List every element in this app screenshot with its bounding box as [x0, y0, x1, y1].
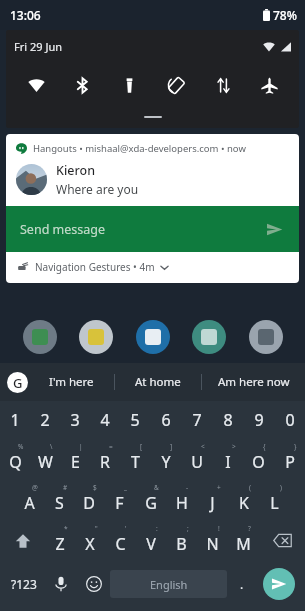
- button[interactable]: *: [45, 520, 75, 561]
- button[interactable]: Hangouts • mishaal@xda-developers.com • …: [6, 134, 299, 206]
- staticText: Where are you: [56, 181, 139, 197]
- staticText: -: [186, 483, 189, 492]
- staticText: <: [201, 442, 205, 451]
- button[interactable]: 0: [274, 401, 305, 438]
- button[interactable]: ': [105, 520, 135, 561]
- staticText: ): [280, 483, 282, 492]
- staticText: I'm here: [49, 374, 94, 390]
- button[interactable]: 6: [150, 401, 181, 438]
- button[interactable]: Voice input: [44, 561, 77, 607]
- button[interactable]: 3: [60, 401, 90, 438]
- staticText: 78%: [273, 7, 297, 23]
- staticText: 3: [70, 409, 80, 431]
- button[interactable]: ?: [228, 520, 259, 561]
- button[interactable]: }: [274, 438, 305, 479]
- button[interactable]: Emoji: [77, 561, 110, 607]
- button[interactable]: 1: [0, 401, 30, 438]
- button[interactable]: ?123: [3, 561, 44, 607]
- staticText: Send message: [20, 221, 106, 238]
- button[interactable]: [: [120, 438, 150, 479]
- button[interactable]: :: [135, 520, 166, 561]
- staticText: +: [217, 483, 221, 492]
- button[interactable]: (: [228, 479, 259, 520]
- staticText: G: [145, 492, 157, 514]
- button[interactable]: Wi-Fi: [19, 68, 53, 102]
- button[interactable]: $: [74, 479, 104, 520]
- staticText: .: [240, 576, 244, 592]
- button[interactable]: Mobile data: [206, 68, 240, 102]
- staticText: F: [115, 492, 124, 514]
- staticText: 7: [192, 409, 202, 431]
- staticText: 4: [100, 409, 110, 431]
- button[interactable]: Shift: [0, 520, 45, 561]
- staticText: G: [13, 374, 23, 392]
- button[interactable]: ]: [150, 438, 181, 479]
- staticText: 6: [161, 409, 171, 431]
- staticText: H: [176, 492, 188, 514]
- button[interactable]: @: [14, 479, 44, 520]
- button[interactable]: Backspace: [259, 520, 305, 561]
- button[interactable]: ": [75, 520, 105, 561]
- staticText: B: [176, 533, 187, 555]
- button[interactable]: ): [259, 479, 290, 520]
- staticText: =: [109, 442, 113, 451]
- staticText: !: [218, 524, 220, 533]
- button[interactable]: >: [212, 438, 243, 479]
- button[interactable]: Google: [7, 372, 28, 393]
- button[interactable]: Navigation Gestures • 4m: [6, 252, 299, 283]
- staticText: Hangouts • mishaal@xda-developers.com • …: [33, 142, 246, 155]
- button[interactable]: -: [166, 479, 197, 520]
- button[interactable]: 5: [120, 401, 150, 438]
- staticText: \: [50, 442, 53, 451]
- button[interactable]: %: [0, 438, 30, 479]
- button[interactable]: Am here now: [202, 363, 305, 401]
- button[interactable]: |: [60, 438, 90, 479]
- button[interactable]: 4: [90, 401, 120, 438]
- staticText: Am here now: [218, 374, 290, 390]
- staticText: J: [210, 492, 215, 514]
- button[interactable]: 2: [30, 401, 60, 438]
- button[interactable]: <: [181, 438, 212, 479]
- staticText: D: [83, 492, 95, 514]
- button[interactable]: Flashlight: [112, 68, 146, 102]
- button[interactable]: !: [197, 520, 228, 561]
- button[interactable]: +: [197, 479, 228, 520]
- staticText: }: [294, 442, 297, 451]
- button[interactable]: _: [104, 479, 135, 520]
- staticText: P: [285, 451, 295, 473]
- staticText: 2: [40, 409, 50, 431]
- staticText: Navigation Gestures • 4m: [35, 260, 155, 274]
- staticText: *: [64, 524, 68, 533]
- button[interactable]: English: [110, 570, 227, 598]
- staticText: V: [146, 533, 156, 555]
- button[interactable]: I'm here: [28, 363, 114, 401]
- staticText: M: [236, 533, 251, 555]
- staticText: 1: [10, 409, 20, 431]
- button[interactable]: Auto-rotate: [159, 68, 193, 102]
- button[interactable]: Send: [263, 218, 285, 240]
- button[interactable]: Airplane mode: [252, 68, 286, 102]
- staticText: @: [32, 483, 38, 492]
- button[interactable]: &: [135, 479, 166, 520]
- staticText: English: [150, 577, 188, 592]
- button[interactable]: \: [30, 438, 60, 479]
- staticText: Y: [161, 451, 171, 473]
- button[interactable]: ;: [166, 520, 197, 561]
- button[interactable]: =: [90, 438, 120, 479]
- staticText: K: [239, 492, 249, 514]
- staticText: A: [24, 492, 35, 514]
- button[interactable]: Send: [256, 561, 302, 607]
- button[interactable]: .: [227, 561, 256, 607]
- staticText: [: [140, 442, 143, 451]
- button[interactable]: 7: [181, 401, 212, 438]
- button[interactable]: Bluetooth: [65, 68, 99, 102]
- staticText: ]: [170, 442, 173, 451]
- button[interactable]: {: [243, 438, 274, 479]
- button[interactable]: 9: [243, 401, 274, 438]
- staticText: ;: [187, 524, 189, 533]
- button[interactable]: #: [44, 479, 74, 520]
- button[interactable]: At home: [115, 363, 201, 401]
- button[interactable]: 8: [212, 401, 243, 438]
- button[interactable]: Send message: [6, 206, 299, 252]
- staticText: {: [263, 442, 266, 451]
